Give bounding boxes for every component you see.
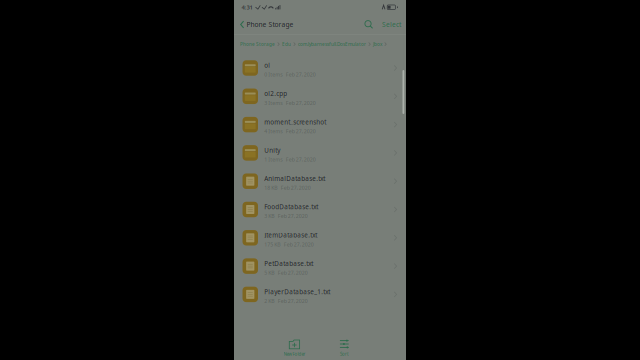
staticText: 0 Items [264,71,282,78]
staticText: Feb 27, 2020 [281,184,311,191]
staticText: 2 KB [264,297,274,304]
staticText: ol [264,61,270,70]
staticText: Feb 27, 2020 [286,71,316,78]
staticText: 4 Items [264,128,282,135]
staticText: Unity [264,146,280,154]
button[interactable]: New Folder [277,339,311,357]
button[interactable]: FoodDatabase.txt [234,195,406,224]
button[interactable]: AnimalDatabase.txt [234,167,406,195]
staticText: moment_screenshot [264,118,326,126]
staticText: 1 Items [264,156,282,163]
button[interactable]: PlayerDatabase_1.txt [234,280,406,309]
staticText: Sort [340,351,349,357]
staticText: New Folder [283,351,305,357]
button[interactable]: Phone Storage [240,41,275,47]
staticText: 3 Items [264,99,282,106]
button[interactable]: Phone Storage [240,20,294,29]
staticText: 175 KB [264,241,280,248]
staticText: Feb 27, 2020 [278,297,308,304]
staticText: ItemDatabase.txt [264,231,317,239]
staticText: Jbox [373,41,382,47]
staticText: 4:31 [241,3,252,11]
staticText: Feb 27, 2020 [286,128,316,135]
staticText: Feb 27, 2020 [278,269,308,276]
button[interactable]: PetDatabase.txt [234,252,406,280]
staticText: Feb 27, 2020 [278,212,308,220]
staticText: 5 KB [264,269,274,276]
button[interactable]: moment_screenshot [234,110,406,139]
staticText: ol2.cpp [264,89,287,98]
button[interactable]: ol2.cpp [234,82,406,110]
button[interactable]: ol [234,54,406,82]
staticText: Select [382,20,401,29]
staticText: Phone Storage [240,41,275,47]
button[interactable]: Search [365,20,373,29]
staticText: Feb 27, 2020 [284,241,314,248]
button[interactable]: ItemDatabase.txt [234,224,406,252]
button[interactable]: Unity [234,139,406,167]
staticText: 18 KB [264,184,277,191]
button[interactable]: Jbox [373,41,382,47]
staticText: Phone Storage [247,20,294,29]
staticText: PetDatabase.txt [264,259,313,268]
staticText: FoodDatabase.txt [264,203,318,211]
staticText: AnimalDatabase.txt [264,174,325,183]
button[interactable]: Edu [282,41,291,47]
staticText: Edu [282,41,291,47]
button[interactable]: Select [373,20,401,29]
button[interactable]: Sort [327,339,361,357]
staticText: Feb 27, 2020 [286,99,316,106]
button[interactable]: com.lybarnessfull.DosEmulator [298,41,366,47]
staticText: PlayerDatabase_1.txt [264,287,330,296]
staticText: com.lybarnessfull.DosEmulator [298,41,366,47]
staticText: 3 KB [264,212,274,220]
staticText: Feb 27, 2020 [286,156,316,163]
